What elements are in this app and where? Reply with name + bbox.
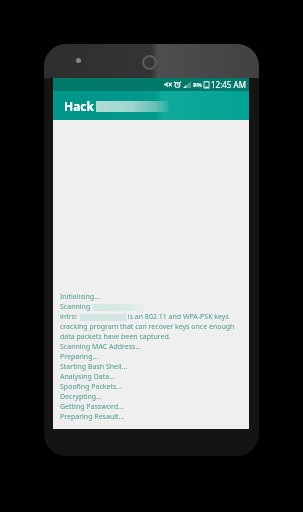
staticText: Getting Password...: [60, 402, 124, 412]
staticText: cracking program that can recover keys o…: [60, 322, 235, 332]
staticText: Initialising...: [60, 292, 100, 302]
staticText: 8%: [193, 81, 202, 89]
staticText: Starting Bash Shell...: [60, 362, 128, 372]
staticText: Analysing Data...: [60, 372, 115, 382]
staticText: is an 802.11 and WPA-PSK keys: [126, 312, 229, 322]
staticText: Spoofing Packets...: [60, 382, 122, 392]
staticText: Hack: [64, 98, 95, 114]
button[interactable]: Hack: [53, 91, 249, 120]
staticText: intro:: [60, 312, 78, 322]
staticText: Decrypting...: [60, 392, 102, 402]
staticText: Scanning: [60, 302, 91, 312]
staticText: Preparing...: [60, 352, 99, 362]
staticText: data packets have been captured.: [60, 332, 171, 342]
staticText: Scanning MAC Address...: [60, 342, 142, 352]
staticText: 12:45 AM: [211, 79, 246, 90]
staticText: Preparing Resault...: [60, 412, 125, 422]
